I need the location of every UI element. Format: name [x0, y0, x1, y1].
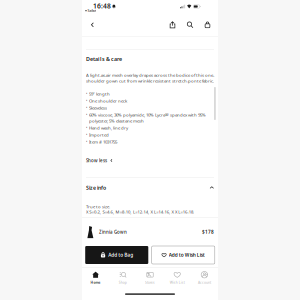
button[interactable]: Add to Bag [85, 246, 148, 264]
staticText: • [86, 139, 87, 144]
button[interactable]: Shop [109, 271, 136, 285]
staticText: Account [198, 280, 211, 285]
staticText: Sleeveless [89, 105, 107, 111]
staticText: Imported [89, 132, 109, 138]
staticText: $178 [202, 229, 214, 235]
staticText: Wish List [170, 280, 185, 285]
staticText: Shop [119, 280, 127, 285]
staticText: • [86, 105, 87, 110]
staticText: • [86, 132, 87, 137]
button[interactable]: Add to Wish List [152, 246, 215, 264]
button[interactable]: Home [82, 271, 109, 285]
staticText: Size info [86, 184, 106, 191]
button[interactable]: Back [86, 18, 99, 31]
staticText: • [86, 98, 87, 103]
staticText: Safari [87, 8, 96, 13]
staticText: One shoulder neck [89, 98, 127, 104]
staticText: Show less [86, 157, 107, 163]
staticText: A light-as-air mesh overlay drapes acros… [86, 72, 214, 84]
staticText: Stores [145, 280, 155, 285]
button[interactable]: Account [191, 271, 218, 285]
staticText: 16:48 [93, 1, 111, 10]
staticText: 60% viscose, 30% polyamide, 10% Lycra® s… [89, 112, 206, 124]
button[interactable]: Stores [136, 271, 164, 285]
staticText: 59" length [89, 91, 110, 97]
staticText: XS=0-2, S=4-6, M=8-10, L=12-14, XL=14-16… [86, 209, 194, 215]
staticText: • [86, 91, 87, 96]
staticText: • [86, 125, 87, 130]
staticText: Details & care [86, 55, 122, 63]
button[interactable]: Share [166, 18, 179, 31]
staticText: Hand wash, line dry [89, 125, 128, 131]
button[interactable]: Show less [86, 157, 113, 163]
staticText: • [86, 112, 87, 117]
staticText: True to size. [86, 204, 110, 209]
staticText: Zinnia Gown [99, 229, 127, 235]
button[interactable]: Wish List [164, 271, 191, 285]
staticText: Home [91, 280, 101, 285]
button[interactable]: Search [183, 18, 196, 31]
staticText: Add to Bag [108, 252, 133, 258]
staticText: Item # 1031755 [89, 139, 117, 145]
staticText: Add to Wish List [169, 252, 205, 258]
button[interactable]: Shopping bag [201, 18, 214, 31]
button[interactable]: Size info [86, 184, 214, 191]
